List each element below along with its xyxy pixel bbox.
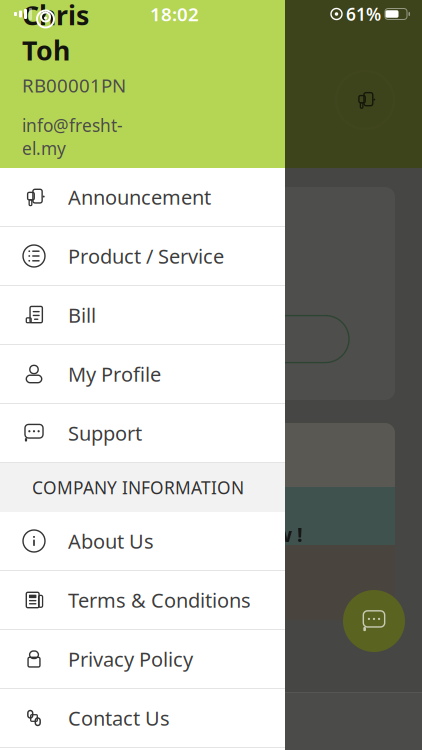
staticText: Announcement xyxy=(68,184,211,210)
staticText: Chris Toh xyxy=(22,0,89,68)
button[interactable]: My Profile xyxy=(0,345,285,404)
button[interactable]: Contact Us xyxy=(0,689,285,748)
staticText: w ! xyxy=(275,521,303,548)
staticText: info@freshtel.my xyxy=(22,114,123,160)
button[interactable]: Support xyxy=(0,404,285,463)
staticText: Bill xyxy=(68,302,96,328)
staticText: COMPANY INFORMATION xyxy=(32,476,244,499)
staticText: My Profile xyxy=(68,361,161,387)
button[interactable]: Bill xyxy=(0,286,285,345)
button[interactable]: About Us xyxy=(0,512,285,571)
staticText: Support xyxy=(68,420,142,446)
button[interactable]: Terms & Conditions xyxy=(0,571,285,630)
staticText: Contact Us xyxy=(68,705,170,731)
staticText: Terms & Conditions xyxy=(68,587,251,613)
staticText: Y BILL xyxy=(203,327,259,351)
button[interactable]: Announcement xyxy=(0,168,285,227)
staticText: 0111111111122 xyxy=(22,163,122,209)
button[interactable]: Privacy Policy xyxy=(0,630,285,689)
staticText: RB00001PN xyxy=(22,73,126,98)
staticText: Product / Service xyxy=(68,243,224,269)
staticText: 18:02 xyxy=(150,2,199,26)
button[interactable]: Product / Service xyxy=(0,227,285,286)
staticText: 61% xyxy=(346,2,381,25)
staticText: About Us xyxy=(68,528,154,554)
staticText: Privacy Policy xyxy=(68,646,193,672)
